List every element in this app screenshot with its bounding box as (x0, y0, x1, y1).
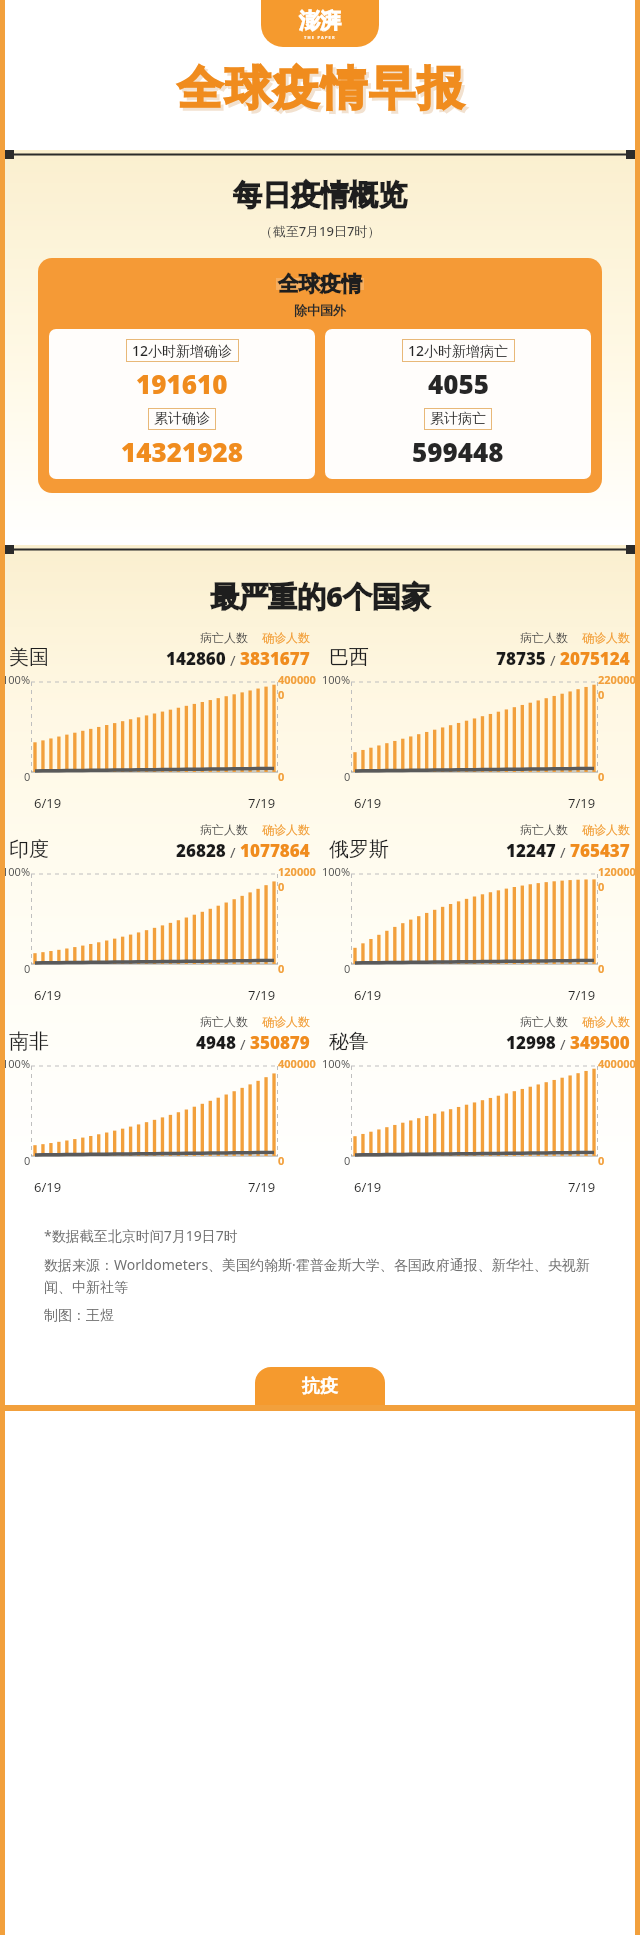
staticText: 7/19 (248, 986, 276, 1004)
staticText: 病亡人数 (520, 630, 568, 645)
staticText: 0 (278, 961, 285, 976)
staticText: 0 (344, 1153, 351, 1168)
button[interactable]: 秘鲁 (320, 1014, 640, 1196)
staticText: 0 (24, 1153, 31, 1168)
staticText: 0 (344, 769, 351, 784)
staticText: 全球疫情 (278, 271, 362, 297)
staticText: 累计确诊 (154, 410, 210, 428)
staticText: 病亡人数 (520, 1014, 568, 1029)
staticText: 26828 (176, 839, 226, 862)
staticText: 南非 (9, 1029, 49, 1054)
staticText: / (236, 1034, 250, 1054)
staticText: 78735 (496, 647, 546, 670)
staticText: 6/19 (34, 794, 62, 812)
staticText: 数据来源：Worldometers、美国约翰斯·霍普金斯大学、各国政府通报、新华… (44, 1255, 596, 1297)
staticText: 制图：王煜 (44, 1307, 114, 1325)
staticText: 0 (278, 769, 285, 784)
staticText: 确诊人数 (262, 1014, 310, 1029)
staticText: 350879 (250, 1031, 310, 1054)
staticText: 7/19 (568, 1178, 596, 1196)
staticText: *数据截至北京时间7月19日7时 (44, 1226, 238, 1245)
staticText: 765437 (570, 839, 630, 862)
staticText: 确诊人数 (582, 630, 630, 645)
staticText: / (546, 650, 560, 670)
staticText: 4055 (428, 366, 489, 401)
staticText: 100% (2, 672, 31, 687)
staticText: 7/19 (248, 1178, 276, 1196)
button[interactable]: 12小时新增病亡 (325, 329, 591, 479)
staticText: THE PAPER (304, 35, 336, 40)
button[interactable]: 美国 (0, 630, 320, 812)
staticText: 美国 (9, 645, 49, 670)
staticText: 6/19 (34, 986, 62, 1004)
staticText: 澎湃 (299, 8, 341, 34)
staticText: 349500 (570, 1031, 630, 1054)
staticText: 0 (278, 1153, 285, 1168)
staticText: 12小时新增确诊 (132, 341, 233, 360)
staticText: 确诊人数 (262, 822, 310, 837)
staticText: / (556, 1034, 570, 1054)
staticText: 确诊人数 (582, 1014, 630, 1029)
staticText: 最严重的6个国家 (0, 576, 640, 616)
staticText: / (226, 842, 240, 862)
staticText: 6/19 (354, 986, 382, 1004)
staticText: 599448 (412, 434, 504, 469)
staticText: 4000000 (278, 672, 320, 702)
staticText: 巴西 (329, 645, 369, 670)
staticText: 12998 (506, 1031, 556, 1054)
button[interactable]: 巴西 (320, 630, 640, 812)
staticText: 1200000 (598, 864, 640, 894)
staticText: 100% (322, 1056, 351, 1071)
staticText: 1077864 (240, 839, 310, 862)
staticText: 7/19 (248, 794, 276, 812)
staticText: 病亡人数 (200, 1014, 248, 1029)
staticText: 病亡人数 (520, 822, 568, 837)
staticText: 全球疫情早报 (176, 60, 464, 118)
button[interactable]: 12小时新增确诊 (49, 329, 315, 479)
staticText: 142860 (166, 647, 226, 670)
staticText: （截至7月19日7时） (0, 222, 640, 240)
staticText: 0 (24, 769, 31, 784)
staticText: 3831677 (240, 647, 310, 670)
staticText: 全球疫情早报 (179, 63, 467, 121)
staticText: 100% (2, 864, 31, 879)
staticText: 100% (322, 864, 351, 879)
staticText: 1200000 (278, 864, 320, 894)
staticText: 6/19 (34, 1178, 62, 1196)
staticText: 印度 (9, 837, 49, 862)
staticText: / (556, 842, 570, 862)
button[interactable]: 南非 (0, 1014, 320, 1196)
staticText: 7/19 (568, 986, 596, 1004)
staticText: 400000 (598, 1056, 636, 1071)
staticText: 100% (2, 1056, 31, 1071)
staticText: 0 (598, 1153, 605, 1168)
staticText: 病亡人数 (200, 822, 248, 837)
staticText: 秘鲁 (329, 1029, 369, 1054)
staticText: 2075124 (560, 647, 630, 670)
staticText: 12247 (506, 839, 556, 862)
staticText: 0 (598, 769, 605, 784)
staticText: 每日疫情概览 (0, 177, 640, 214)
staticText: 6/19 (354, 794, 382, 812)
staticText: 100% (322, 672, 351, 687)
staticText: 病亡人数 (200, 630, 248, 645)
button[interactable]: 抗疫 (255, 1367, 385, 1405)
staticText: 12小时新增病亡 (408, 341, 509, 360)
staticText: 7/19 (568, 794, 596, 812)
staticText: 确诊人数 (262, 630, 310, 645)
staticText: 确诊人数 (582, 822, 630, 837)
staticText: 191610 (136, 366, 228, 401)
staticText: 14321928 (121, 434, 243, 469)
button[interactable]: 全球疫情 (38, 258, 602, 493)
staticText: 2200000 (598, 672, 640, 702)
staticText: 除中国外 (38, 302, 602, 318)
button[interactable]: 俄罗斯 (320, 822, 640, 1004)
staticText: 0 (24, 961, 31, 976)
staticText: 抗疫 (302, 1375, 338, 1398)
button[interactable]: The Paper logo (261, 0, 379, 47)
staticText: 6/19 (354, 1178, 382, 1196)
staticText: 俄罗斯 (329, 837, 389, 862)
button[interactable]: 印度 (0, 822, 320, 1004)
staticText: 4948 (196, 1031, 236, 1054)
staticText: / (226, 650, 240, 670)
